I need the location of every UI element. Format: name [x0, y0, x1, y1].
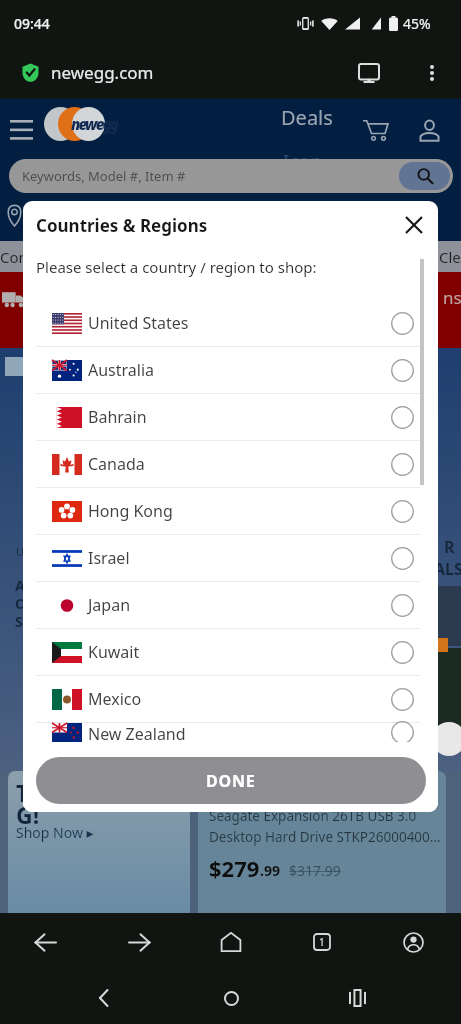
staticText: G!	[16, 799, 40, 830]
staticText: Keywords, Model #, Item #	[22, 167, 186, 185]
staticText: Australia	[88, 359, 155, 381]
staticText: Canada	[88, 453, 145, 475]
staticText: Hong Kong	[88, 500, 173, 522]
staticText: 45%	[403, 14, 431, 33]
button[interactable]: Shop Now ▸	[16, 823, 94, 842]
staticText: $317.99	[289, 861, 341, 880]
button[interactable]: Kuwait	[36, 629, 420, 675]
staticText: A O S	[15, 576, 27, 631]
button[interactable]: Hong Kong	[36, 488, 420, 534]
button[interactable]: Account	[407, 108, 451, 152]
button[interactable]: Recent apps	[334, 975, 380, 1021]
button[interactable]: Tabs	[299, 919, 345, 965]
button[interactable]: Home	[208, 919, 254, 965]
button[interactable]: Israel	[36, 535, 420, 581]
staticText: Israel	[88, 547, 130, 569]
staticText: Bahrain	[88, 406, 147, 428]
button[interactable]: Menu	[10, 114, 34, 144]
staticText: Com	[0, 247, 33, 267]
button[interactable]: United States	[36, 300, 420, 346]
other: Secure connection	[22, 63, 39, 82]
staticText: R	[444, 536, 455, 558]
staticText: Please select a country / region to shop…	[36, 257, 317, 277]
staticText: Icon	[283, 149, 322, 175]
button[interactable]: Mexico	[36, 676, 420, 722]
staticText: $279	[209, 853, 260, 883]
button[interactable]: Cast to device	[347, 51, 391, 95]
staticText: Kuwait	[88, 641, 140, 663]
staticText: 09:44	[14, 14, 50, 33]
staticText: T	[16, 777, 30, 808]
staticText: Seagate Expansion 26TB USB 3.0 Desktop H…	[209, 807, 441, 846]
staticText: New Zealand	[88, 723, 186, 742]
button[interactable]: Japan	[36, 582, 420, 628]
button[interactable]: Australia	[36, 347, 420, 393]
button[interactable]: Home	[208, 975, 254, 1021]
staticText: United States	[88, 312, 189, 334]
staticText: newegg	[71, 114, 118, 134]
staticText: 1	[319, 935, 325, 949]
staticText: Countries & Regions	[36, 214, 208, 237]
button[interactable]: Keywords, Model #, Item #	[9, 159, 453, 193]
button[interactable]: Deals	[281, 104, 333, 131]
button[interactable]: Back	[81, 975, 127, 1021]
staticText: ns	[443, 286, 461, 309]
button[interactable]: More options	[412, 53, 452, 93]
button[interactable]: Forward	[117, 919, 163, 965]
button[interactable]: Canada	[36, 441, 420, 487]
staticText: DONE	[206, 770, 256, 792]
staticText: ALS	[434, 558, 461, 580]
staticText: Cle	[439, 247, 461, 267]
staticText: Mexico	[88, 688, 142, 710]
button[interactable]: DONE	[36, 757, 426, 804]
staticText: U	[16, 544, 25, 559]
button[interactable]: Back	[22, 919, 68, 965]
button[interactable]: Cart	[353, 108, 397, 152]
staticText: Japan	[88, 594, 131, 616]
button[interactable]: New Zealand	[36, 723, 420, 742]
button[interactable]: Close	[395, 206, 433, 244]
button[interactable]: Profile	[390, 919, 436, 965]
staticText: newegg.com	[51, 61, 154, 84]
button[interactable]: Bahrain	[36, 394, 420, 440]
staticText: .99	[260, 861, 280, 880]
